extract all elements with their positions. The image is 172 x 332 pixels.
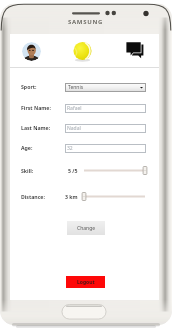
button[interactable]: Tennis: [65, 83, 146, 92]
button[interactable]: Rafael: [65, 104, 146, 113]
staticText: SAMSUNG: [68, 18, 104, 26]
button[interactable]: Messages: [126, 42, 146, 62]
staticText: 3 km: [65, 193, 78, 200]
staticText: Distance:: [21, 193, 45, 200]
staticText: Logout: [77, 279, 95, 286]
staticText: 5 /5: [68, 167, 78, 174]
button[interactable]: Logout: [66, 276, 105, 288]
staticText: Last Name:: [21, 124, 51, 131]
button[interactable]: 5 /5: [81, 166, 148, 175]
staticText: Sport:: [21, 83, 37, 90]
staticText: 32: [67, 145, 73, 152]
staticText: Skill:: [21, 167, 34, 174]
button[interactable]: Sport: [73, 42, 92, 61]
staticText: Age:: [21, 144, 33, 151]
button[interactable]: Change: [67, 221, 105, 235]
staticText: Tennis: [68, 84, 84, 91]
button[interactable]: 3 km: [81, 192, 148, 201]
button[interactable]: Profile: [22, 42, 41, 61]
staticText: First Name:: [21, 104, 51, 111]
staticText: Rafael: [67, 105, 82, 112]
staticText: Change: [77, 225, 96, 232]
staticText: Nadal: [67, 125, 81, 132]
button[interactable]: 32: [65, 144, 146, 153]
button[interactable]: Nadal: [65, 124, 146, 133]
